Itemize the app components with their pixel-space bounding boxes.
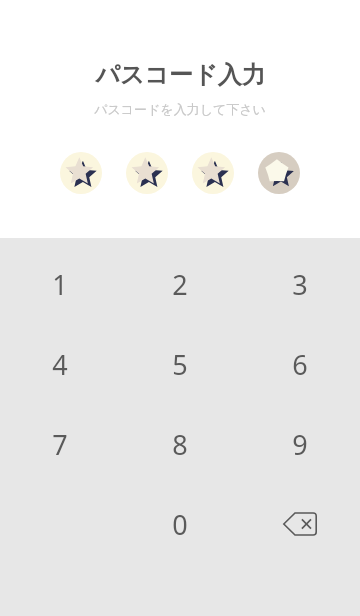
- staticText: パスコードを入力して下さい: [94, 101, 266, 117]
- button[interactable]: 6: [240, 324, 360, 404]
- button[interactable]: 1: [0, 244, 120, 324]
- staticText: 0: [172, 506, 188, 543]
- button[interactable]: Backspace: [240, 484, 360, 564]
- staticText: 9: [292, 426, 308, 463]
- staticText: 2: [172, 266, 188, 303]
- other: Entered digit: [60, 152, 102, 194]
- staticText: 5: [172, 346, 188, 383]
- staticText: 3: [292, 266, 308, 303]
- button[interactable]: 2: [120, 244, 240, 324]
- staticText: 7: [52, 426, 68, 463]
- button[interactable]: 3: [240, 244, 360, 324]
- staticText: 6: [292, 346, 308, 383]
- other: Empty digit: [258, 152, 300, 194]
- staticText: パスコード入力: [95, 60, 266, 90]
- button[interactable]: 7: [0, 404, 120, 484]
- staticText: 1: [52, 266, 68, 303]
- button[interactable]: 9: [240, 404, 360, 484]
- other: Entered digit: [126, 152, 168, 194]
- button[interactable]: 0: [120, 484, 240, 564]
- staticText: 8: [172, 426, 188, 463]
- button[interactable]: 4: [0, 324, 120, 404]
- staticText: 4: [52, 346, 68, 383]
- button[interactable]: 5: [120, 324, 240, 404]
- button[interactable]: 8: [120, 404, 240, 484]
- other: Entered digit: [192, 152, 234, 194]
